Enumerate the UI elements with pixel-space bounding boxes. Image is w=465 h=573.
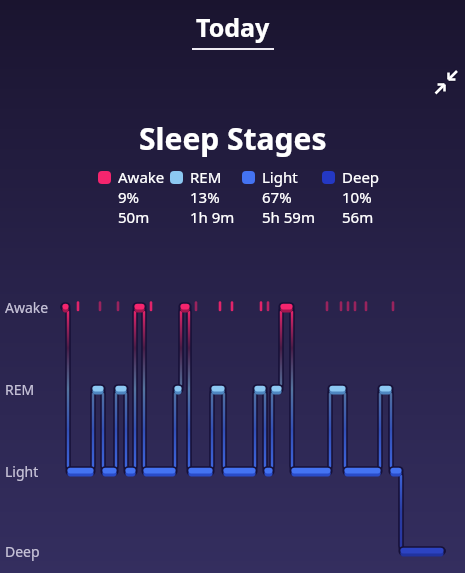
- staticText: Deep: [5, 542, 40, 561]
- staticText: 10%: [342, 187, 372, 207]
- button[interactable]: Light: [242, 167, 315, 227]
- staticText: 1h 9m: [190, 207, 235, 227]
- button[interactable]: [428, 64, 464, 100]
- staticText: Awake: [5, 298, 49, 317]
- staticText: 13%: [190, 187, 220, 207]
- staticText: Light: [5, 462, 39, 481]
- staticText: REM: [190, 167, 222, 187]
- staticText: 50m: [118, 207, 150, 227]
- staticText: Light: [262, 167, 298, 187]
- staticText: Deep: [342, 167, 380, 187]
- button[interactable]: Awake: [98, 167, 165, 227]
- staticText: REM: [5, 380, 35, 399]
- staticText: Awake: [118, 167, 165, 187]
- button[interactable]: REM: [170, 167, 235, 227]
- staticText: Sleep Stages: [139, 118, 327, 159]
- staticText: 67%: [262, 187, 292, 207]
- staticText: 5h 59m: [262, 207, 315, 227]
- staticText: Today: [196, 10, 270, 44]
- button[interactable]: Today: [192, 10, 274, 50]
- staticText: 56m: [342, 207, 374, 227]
- staticText: 9%: [118, 187, 140, 207]
- button[interactable]: Deep: [322, 167, 380, 227]
